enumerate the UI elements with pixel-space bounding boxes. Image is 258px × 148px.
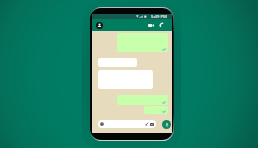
staticText: 5:49 PM — [151, 14, 167, 19]
button[interactable]: Record voice message — [162, 120, 171, 129]
button[interactable] — [144, 106, 168, 114]
button[interactable]: Video call — [147, 21, 155, 29]
button[interactable] — [98, 70, 153, 89]
button[interactable] — [98, 58, 137, 67]
button[interactable] — [117, 33, 168, 52]
button[interactable]: Voice call — [158, 21, 166, 29]
button[interactable] — [117, 95, 168, 105]
button[interactable]: Contact avatar — [96, 22, 103, 29]
button[interactable] — [98, 120, 156, 128]
